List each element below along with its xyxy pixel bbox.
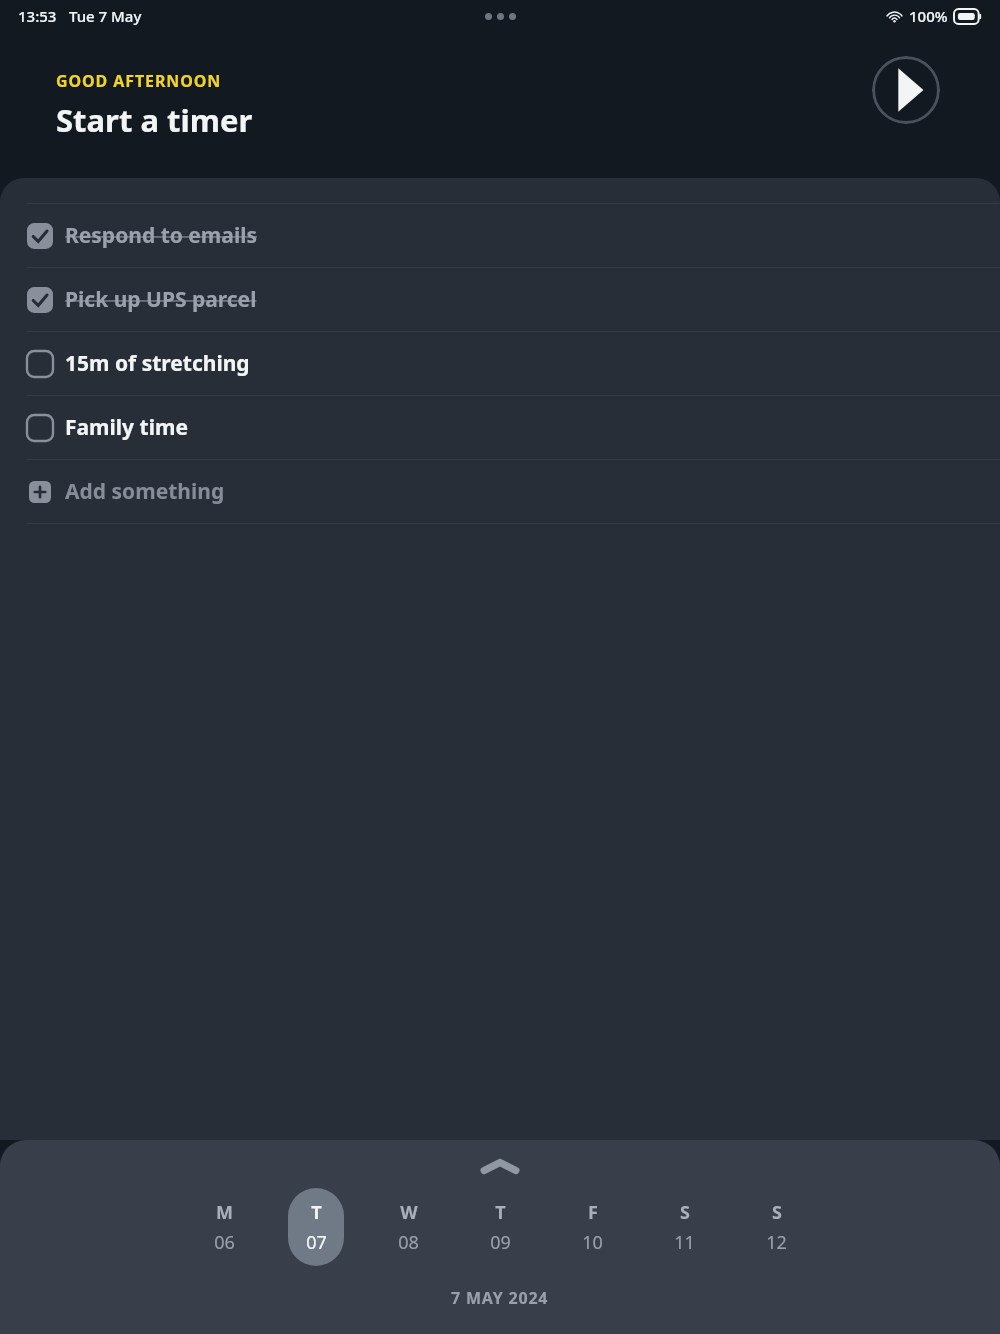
staticText: F	[588, 1200, 598, 1225]
button[interactable]: 15m of stretching	[0, 332, 1000, 395]
staticText: 06	[214, 1230, 235, 1255]
staticText: T	[495, 1200, 506, 1225]
staticText: 08	[398, 1230, 419, 1255]
button[interactable]: F	[564, 1188, 620, 1266]
staticText: 09	[490, 1230, 511, 1255]
staticText: 11	[674, 1230, 695, 1255]
staticText: 7 MAY 2024	[451, 1287, 549, 1309]
button[interactable]: T	[472, 1188, 528, 1266]
staticText: Start a timer	[56, 99, 253, 141]
staticText: Add something	[65, 477, 225, 506]
staticText: S	[680, 1200, 690, 1225]
staticText: 10	[582, 1230, 603, 1255]
button[interactable]: Expand calendar	[470, 1152, 530, 1182]
staticText: 07	[306, 1230, 327, 1255]
button[interactable]: M	[196, 1188, 252, 1266]
staticText: T	[311, 1200, 322, 1225]
button[interactable]: Start timer	[872, 56, 940, 124]
staticText: 12	[766, 1230, 787, 1255]
staticText: 15m of stretching	[65, 349, 250, 378]
button[interactable]: Pick up UPS parcel	[0, 268, 1000, 331]
staticText: Pick up UPS parcel	[65, 285, 257, 314]
button[interactable]: S	[748, 1188, 804, 1266]
button[interactable]: T	[288, 1188, 344, 1266]
button[interactable]: Family time	[0, 396, 1000, 459]
staticText: M	[216, 1200, 233, 1225]
staticText: Tue 7 May	[69, 6, 142, 26]
staticText: W	[400, 1200, 418, 1225]
staticText: Family time	[65, 413, 188, 442]
button[interactable]: W	[380, 1188, 436, 1266]
button[interactable]: Respond to emails	[0, 204, 1000, 267]
staticText: GOOD AFTERNOON	[56, 70, 222, 92]
button[interactable]: Add something	[0, 460, 1000, 523]
staticText: 13:53	[18, 6, 57, 26]
staticText: Respond to emails	[65, 221, 258, 250]
staticText: S	[772, 1200, 782, 1225]
staticText: 100%	[909, 6, 948, 26]
button[interactable]: S	[656, 1188, 712, 1266]
